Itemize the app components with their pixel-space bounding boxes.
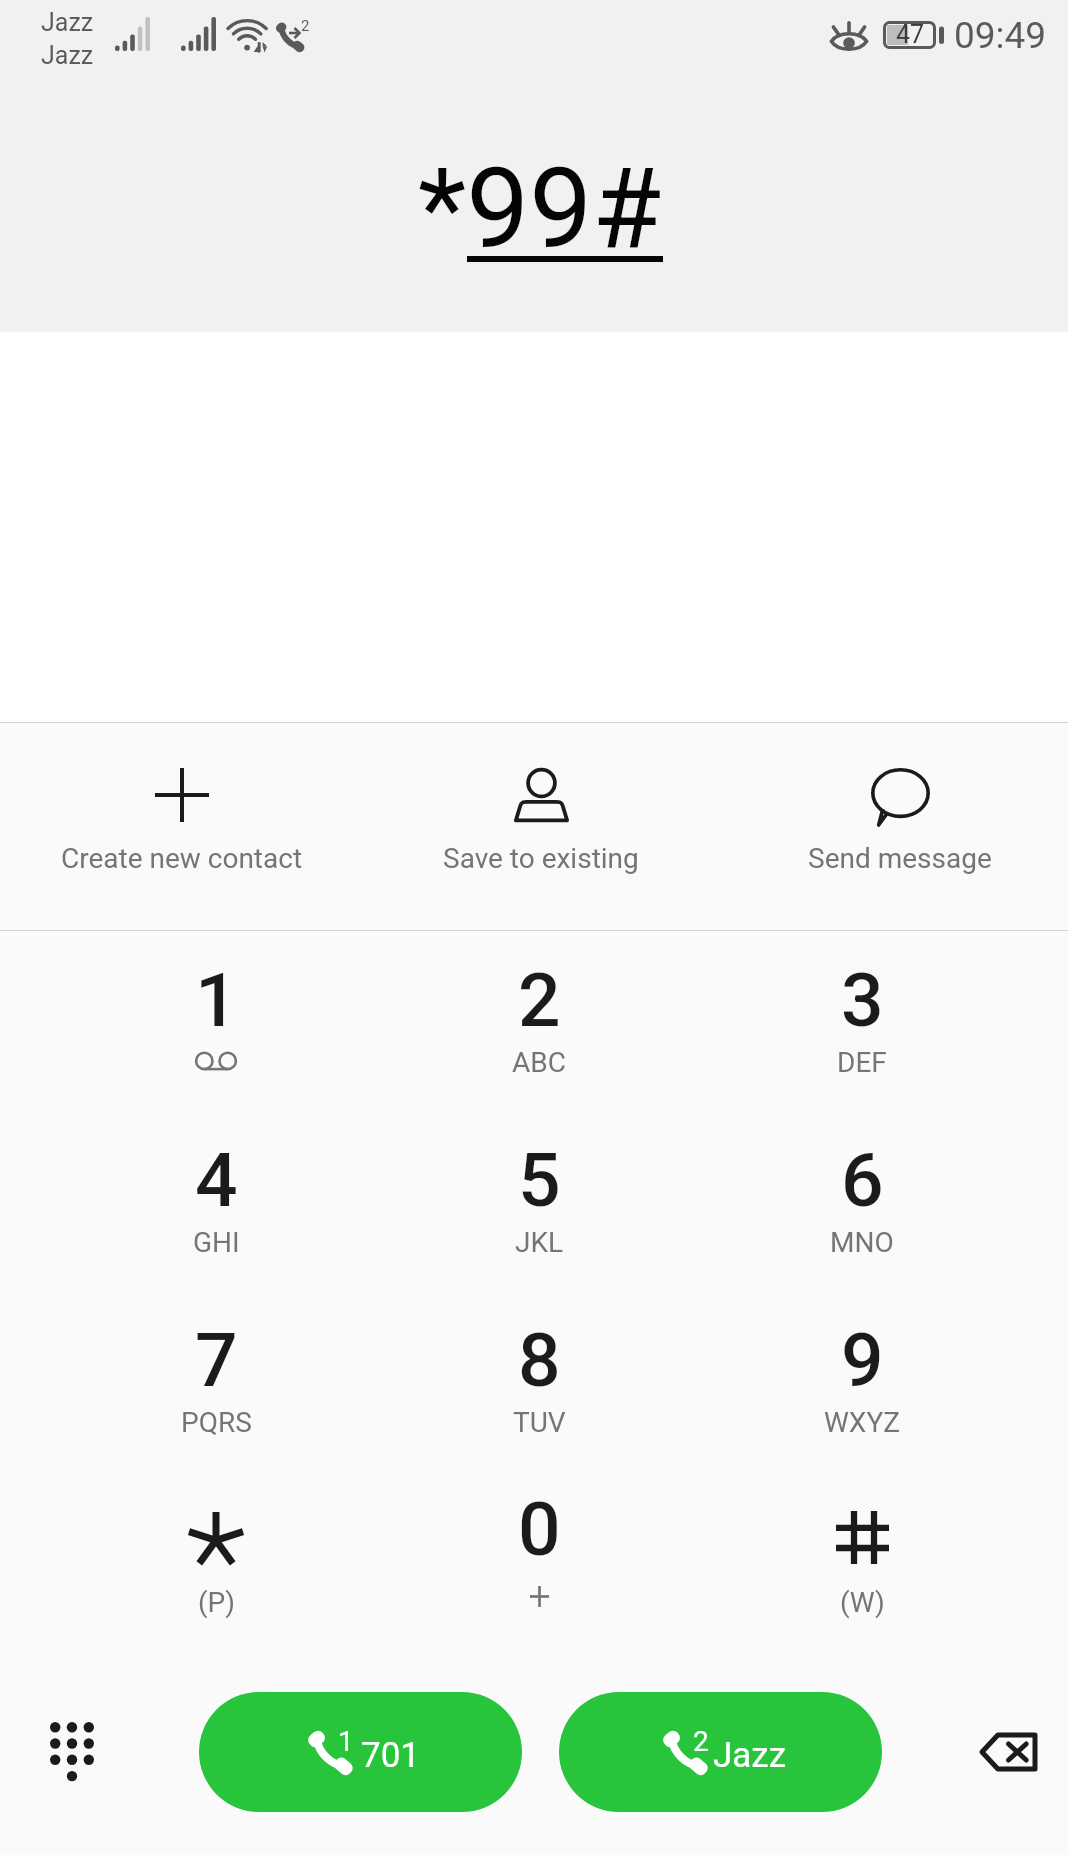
button[interactable]: 7 bbox=[54, 1301, 378, 1481]
button[interactable]: 0 bbox=[377, 1481, 701, 1661]
button[interactable]: 4 bbox=[54, 1121, 378, 1301]
staticText: TUV bbox=[513, 1406, 566, 1439]
staticText: WXYZ bbox=[824, 1406, 900, 1439]
button[interactable]: 3 bbox=[700, 941, 1024, 1121]
button[interactable]: 1 bbox=[199, 1692, 522, 1812]
staticText: GHI bbox=[193, 1226, 240, 1259]
button[interactable]: Hide dialpad bbox=[17, 1702, 127, 1802]
button[interactable]: Backspace bbox=[953, 1697, 1063, 1807]
button[interactable]: Dialed number *99# bbox=[0, 130, 1068, 270]
staticText: 6 bbox=[841, 1136, 884, 1224]
staticText: Jazz bbox=[713, 1735, 787, 1776]
button[interactable]: Create new contact bbox=[0, 723, 356, 930]
staticText: Send message bbox=[808, 842, 992, 875]
staticText: MNO bbox=[830, 1226, 894, 1259]
staticText: 7 bbox=[195, 1316, 238, 1404]
staticText: Create new contact bbox=[61, 842, 303, 875]
button[interactable]: 6 bbox=[700, 1121, 1024, 1301]
staticText: JKL bbox=[515, 1226, 564, 1259]
staticText: 8 bbox=[518, 1316, 561, 1404]
staticText: 2 bbox=[301, 17, 310, 35]
staticText: 9 bbox=[841, 1316, 884, 1404]
staticText: DEF bbox=[837, 1046, 887, 1079]
staticText: 47 bbox=[896, 20, 925, 48]
button[interactable]: (W) bbox=[700, 1481, 1024, 1661]
button[interactable]: 8 bbox=[377, 1301, 701, 1481]
staticText: Jazz bbox=[41, 41, 94, 70]
button[interactable]: Send message bbox=[712, 723, 1068, 930]
staticText: (P) bbox=[198, 1586, 235, 1619]
staticText: 2 bbox=[518, 956, 561, 1044]
button[interactable]: (P) bbox=[54, 1481, 378, 1661]
staticText: 0 bbox=[518, 1485, 561, 1573]
staticText: 5 bbox=[518, 1136, 561, 1224]
staticText: 1 bbox=[338, 1725, 354, 1758]
button[interactable]: 2 bbox=[559, 1692, 882, 1812]
staticText: PQRS bbox=[181, 1406, 252, 1439]
button[interactable]: 1 bbox=[54, 941, 378, 1121]
staticText: ABC bbox=[512, 1046, 566, 1079]
staticText: 09:49 bbox=[954, 14, 1047, 57]
button[interactable]: 9 bbox=[700, 1301, 1024, 1481]
staticText: 2 bbox=[693, 1725, 709, 1758]
staticText: (W) bbox=[840, 1586, 885, 1619]
staticText: 1 bbox=[195, 956, 238, 1044]
staticText: 701 bbox=[361, 1735, 421, 1776]
button[interactable]: 5 bbox=[377, 1121, 701, 1301]
staticText: Jazz bbox=[41, 8, 94, 37]
button[interactable]: 2 bbox=[377, 941, 701, 1121]
staticText: 4 bbox=[195, 1136, 238, 1224]
staticText: Save to existing bbox=[443, 842, 639, 875]
button[interactable]: Save to existing bbox=[356, 723, 712, 930]
staticText: *99# bbox=[418, 143, 662, 274]
staticText: 3 bbox=[841, 956, 884, 1044]
